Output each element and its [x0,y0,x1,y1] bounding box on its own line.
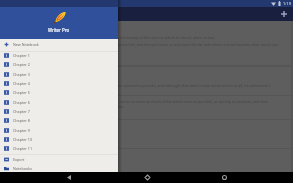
staticText: Writer Pro [48,27,70,33]
staticText: Chapter 5 [13,90,30,95]
button[interactable]: It was a strange and subtle feeling of h… [0,67,291,95]
staticText: Chapter 7 [13,109,30,114]
staticText: and then at long last it stopped on a ne… [5,104,291,109]
button[interactable]: His gaze went sweeping around the room, … [0,96,291,119]
staticText: There were candles hanging from midway o… [5,42,291,47]
button[interactable]: Back [61,172,77,183]
button[interactable]: Recent apps [216,172,232,183]
staticText: Notebooks [13,166,32,171]
staticText: Chapter 3 [13,72,30,77]
button[interactable]: Chapter 6 [0,98,118,107]
staticText: Chapter 10 [13,137,33,142]
staticText: 1:19 [283,1,291,6]
button[interactable]: Chapter 10 [0,135,118,144]
button[interactable]: Chapter 11 [0,144,118,153]
button[interactable]: New Notebook [0,40,118,49]
staticText: Chapter 11 [13,146,33,151]
button[interactable]: Home [139,172,155,183]
button[interactable] [0,149,291,173]
button[interactable]: Chapter 9 [0,126,118,135]
button[interactable]: It was then that the candlelight flicker… [0,21,291,65]
button[interactable]: Export [0,155,118,164]
staticText: Chapter 6 [13,100,30,105]
staticText: It was a strange and subtle feeling of h… [5,83,291,88]
button[interactable]: Chapter 7 [0,107,118,116]
staticText: Chapter 9 [13,128,30,133]
staticText: Chapter 8 [13,118,30,123]
button[interactable]: Chapter 2 [0,60,118,69]
staticText: Chapter 1 [13,53,30,58]
staticText: New Notebook [13,42,39,47]
button[interactable]: Chapter 1 [0,51,118,60]
button[interactable]: Chapter 4 [0,79,118,88]
staticText: Export [13,157,25,162]
staticText: Chapter 2 [13,62,30,67]
button[interactable]: Chapter 3 [0,70,118,79]
button[interactable]: Chapter 5 [0,88,118,97]
staticText: His gaze went sweeping around the room, … [5,99,291,104]
button[interactable]: Notebooks [0,164,118,173]
button[interactable]: New note [278,8,290,20]
staticText: It was then that the candlelight flicker… [5,35,291,40]
button[interactable] [0,120,291,148]
staticText: Chapter 4 [13,81,30,86]
button[interactable]: Chapter 8 [0,116,118,125]
